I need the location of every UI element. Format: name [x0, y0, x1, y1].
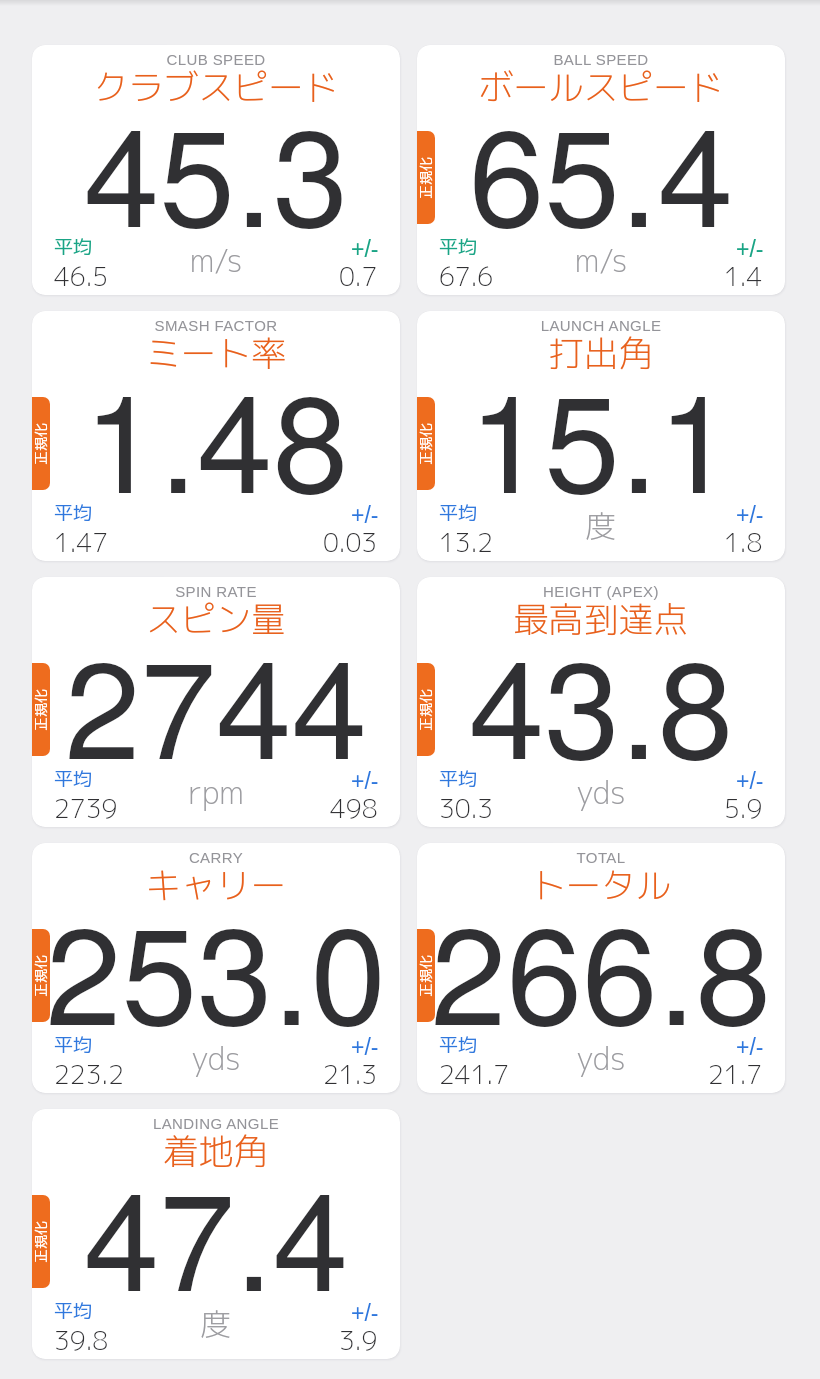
staticText: 1.48	[32, 337, 400, 532]
button[interactable]: HEIGHT (APEX)	[417, 577, 785, 827]
staticText: 0.7	[339, 258, 378, 294]
staticText: 223.2	[54, 1056, 125, 1092]
staticText: キャリー	[32, 860, 400, 909]
staticText: 47.4	[32, 1135, 400, 1330]
staticText: 498	[330, 790, 378, 826]
staticText: 正規化	[32, 955, 50, 997]
button[interactable]: 正規化	[417, 131, 435, 224]
staticText: 着地角	[32, 1126, 400, 1175]
button[interactable]: LAUNCH ANGLE	[417, 311, 785, 561]
button[interactable]: BALL SPEED	[417, 45, 785, 295]
staticText: 21.7	[708, 1056, 763, 1092]
staticText: 正規化	[32, 1221, 50, 1263]
staticText: クラブスピード	[32, 62, 400, 111]
staticText: 1.4	[724, 258, 763, 294]
staticText: yds	[417, 771, 785, 814]
staticText: 15.1	[417, 337, 785, 532]
button[interactable]: SPIN RATE	[32, 577, 400, 827]
staticText: +/-	[736, 502, 764, 528]
staticText: 平均	[439, 766, 478, 793]
button[interactable]: 正規化	[417, 929, 435, 1022]
staticText: +/-	[736, 768, 764, 794]
staticText: CARRY	[32, 849, 400, 866]
button[interactable]: 正規化	[417, 663, 435, 756]
button[interactable]: 正規化	[32, 397, 50, 490]
staticText: 正規化	[417, 423, 435, 465]
staticText: 正規化	[417, 157, 435, 199]
staticText: 266.8	[417, 869, 785, 1064]
staticText: 13.2	[439, 524, 494, 560]
staticText: +/-	[736, 236, 764, 262]
staticText: m/s	[32, 239, 400, 282]
staticText: TOTAL	[417, 849, 785, 866]
staticText: +/-	[351, 768, 379, 794]
staticText: +/-	[736, 1034, 764, 1060]
staticText: 1.8	[724, 524, 763, 560]
staticText	[32, 505, 400, 550]
staticText: 30.3	[439, 790, 494, 826]
button[interactable]: 正規化	[32, 1195, 50, 1288]
button[interactable]: 正規化	[32, 929, 50, 1022]
staticText: BALL SPEED	[417, 51, 785, 68]
staticText: 2744	[32, 603, 400, 798]
staticText: 1.47	[54, 524, 109, 560]
staticText: 46.5	[54, 258, 109, 294]
staticText: 平均	[439, 1032, 478, 1059]
staticText: 平均	[54, 500, 93, 527]
staticText: 45.3	[32, 71, 400, 266]
staticText: 正規化	[32, 689, 50, 731]
staticText: ボールスピード	[417, 62, 785, 111]
staticText: 平均	[439, 234, 478, 261]
staticText: 平均	[439, 500, 478, 527]
staticText: 正規化	[417, 689, 435, 731]
staticText: 0.03	[323, 524, 378, 560]
staticText: 253.0	[32, 869, 400, 1064]
staticText: 2739	[54, 790, 118, 826]
staticText: 平均	[54, 766, 93, 793]
staticText: 241.7	[439, 1056, 510, 1092]
staticText: 39.8	[54, 1322, 109, 1358]
staticText: +/-	[351, 502, 379, 528]
staticText: トータル	[417, 860, 785, 909]
button[interactable]: LANDING ANGLE	[32, 1109, 400, 1359]
staticText: ミート率	[32, 328, 400, 377]
staticText: +/-	[351, 236, 379, 262]
staticText: 度	[32, 1303, 400, 1346]
button[interactable]: 正規化	[32, 663, 50, 756]
staticText: SPIN RATE	[32, 583, 400, 600]
staticText: 43.8	[417, 603, 785, 798]
staticText: LAUNCH ANGLE	[417, 317, 785, 334]
staticText: 平均	[54, 234, 93, 261]
staticText: m/s	[417, 239, 785, 282]
staticText: SMASH FACTOR	[32, 317, 400, 334]
staticText: LANDING ANGLE	[32, 1115, 400, 1132]
staticText: 打出角	[417, 328, 785, 377]
staticText: 平均	[54, 1298, 93, 1325]
staticText: 度	[417, 505, 785, 548]
staticText: yds	[32, 1037, 400, 1080]
button[interactable]: CARRY	[32, 843, 400, 1093]
staticText: 67.6	[439, 258, 494, 294]
staticText: 5.9	[724, 790, 763, 826]
staticText: 最高到達点	[417, 594, 785, 643]
staticText: 3.9	[339, 1322, 378, 1358]
staticText: 正規化	[32, 423, 50, 465]
staticText: rpm	[32, 771, 400, 814]
staticText: yds	[417, 1037, 785, 1080]
staticText: CLUB SPEED	[32, 51, 400, 68]
staticText: スピン量	[32, 594, 400, 643]
button[interactable]: SMASH FACTOR	[32, 311, 400, 561]
staticText: 65.4	[417, 71, 785, 266]
staticText: HEIGHT (APEX)	[417, 583, 785, 600]
staticText: +/-	[351, 1300, 379, 1326]
staticText: +/-	[351, 1034, 379, 1060]
button[interactable]: CLUB SPEED	[32, 45, 400, 295]
button[interactable]: 正規化	[417, 397, 435, 490]
button[interactable]: TOTAL	[417, 843, 785, 1093]
staticText: 正規化	[417, 955, 435, 997]
staticText: 21.3	[323, 1056, 378, 1092]
staticText: 平均	[54, 1032, 93, 1059]
